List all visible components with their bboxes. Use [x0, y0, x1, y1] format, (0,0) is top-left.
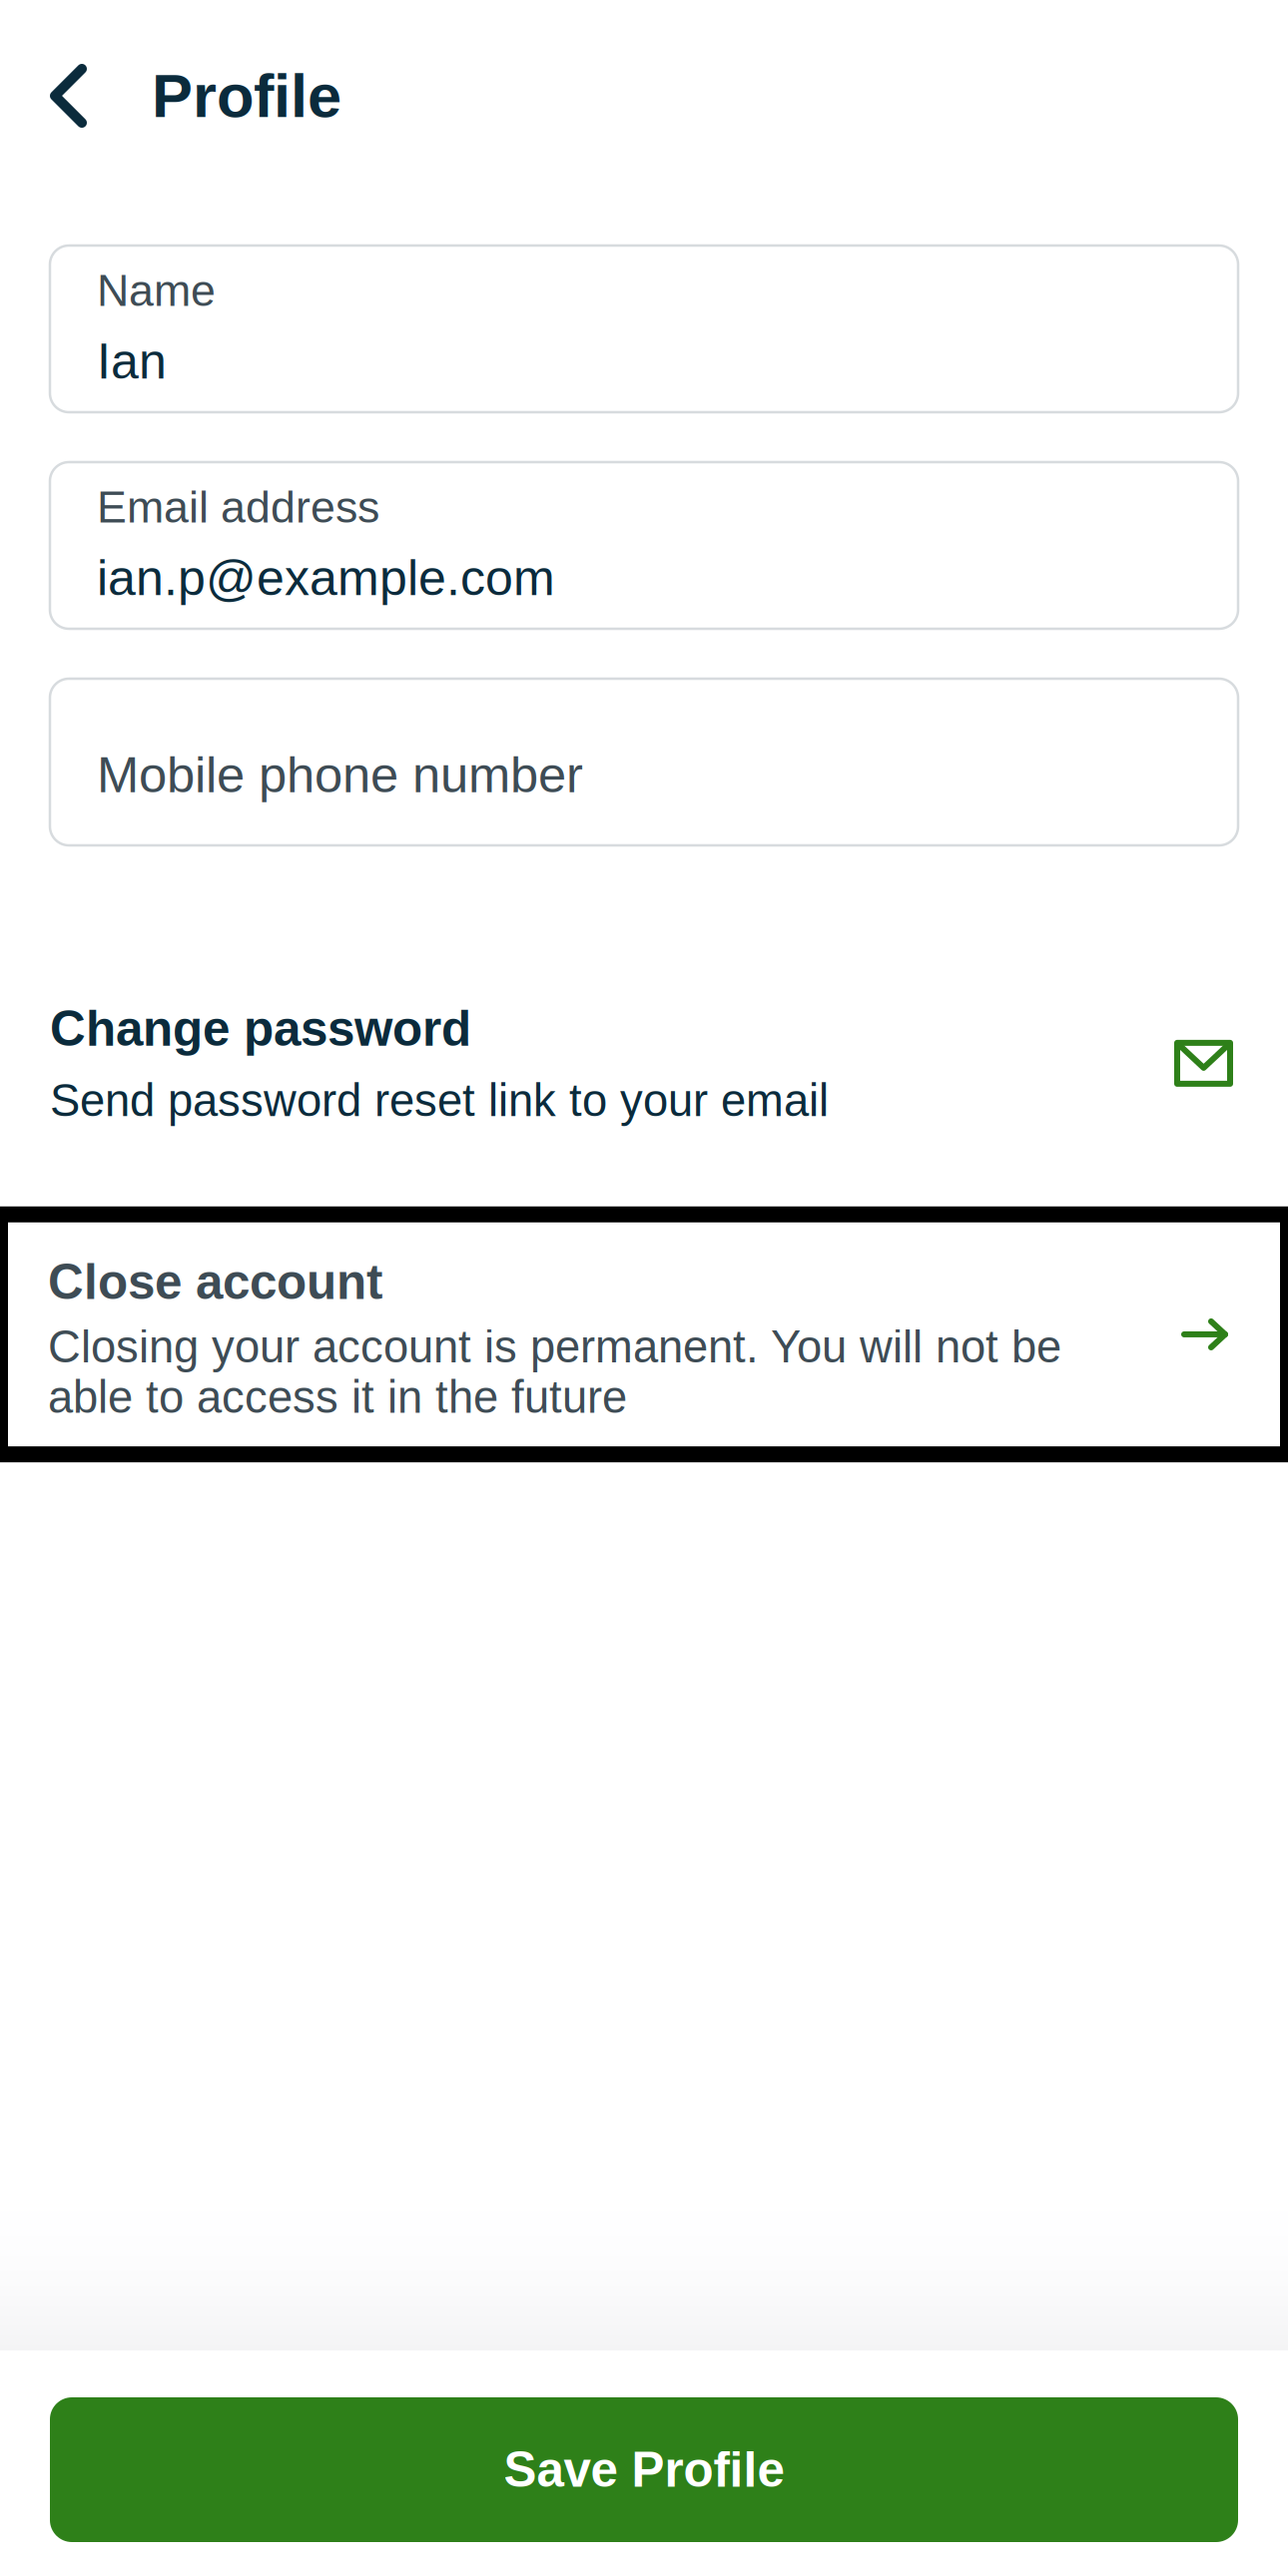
staticText: Change password: [50, 1001, 471, 1056]
button[interactable]: Mobile phone number: [50, 679, 1238, 845]
staticText: Send password reset link to your email: [50, 1075, 829, 1126]
button[interactable]: Name: [50, 246, 1238, 412]
staticText: Name: [97, 265, 216, 315]
staticText: Email address: [97, 482, 379, 532]
staticText: Ian: [97, 333, 167, 389]
button[interactable]: Save Profile: [50, 2397, 1238, 2542]
button[interactable]: Change password: [0, 1001, 1288, 1126]
button[interactable]: Back: [0, 53, 115, 139]
staticText: ian.p@example.com: [97, 550, 555, 606]
button[interactable]: Close account: [0, 1214, 1288, 1454]
staticText: Profile: [152, 62, 341, 130]
button[interactable]: Email address: [50, 462, 1238, 629]
staticText: Closing your account is permanent. You w…: [48, 1321, 1061, 1422]
staticText: Save Profile: [504, 2442, 784, 2497]
staticText: Close account: [48, 1254, 382, 1309]
staticText: Mobile phone number: [97, 747, 583, 803]
